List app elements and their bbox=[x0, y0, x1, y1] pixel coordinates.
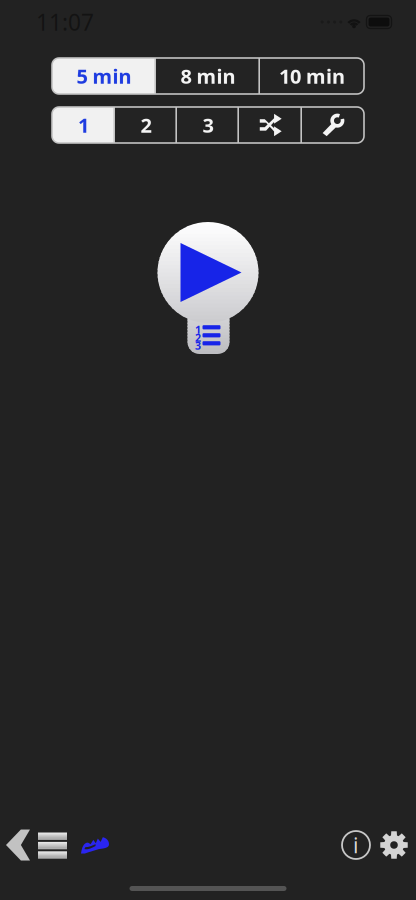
button[interactable]: 5 min bbox=[52, 58, 156, 94]
button[interactable] bbox=[239, 107, 302, 143]
staticText: 10 min bbox=[279, 63, 345, 89]
button[interactable]: 2 bbox=[115, 107, 177, 143]
button[interactable]: Workouts bbox=[73, 822, 117, 868]
button[interactable]: Play bbox=[157, 222, 258, 357]
button[interactable]: Back bbox=[4, 822, 36, 868]
button[interactable]: Settings bbox=[375, 822, 413, 868]
staticText: 3 bbox=[195, 338, 201, 353]
staticText: 11:07 bbox=[36, 7, 94, 37]
button[interactable]: 8 min bbox=[156, 58, 260, 94]
staticText: 2 bbox=[195, 330, 201, 345]
staticText: 2 bbox=[140, 112, 151, 138]
staticText: i bbox=[353, 831, 359, 859]
button[interactable]: Menu bbox=[36, 822, 73, 868]
button[interactable]: Info bbox=[337, 822, 375, 868]
staticText: 3 bbox=[202, 112, 213, 138]
staticText: 5 min bbox=[76, 63, 131, 89]
button[interactable] bbox=[302, 107, 364, 143]
staticText: 1 bbox=[78, 112, 89, 138]
button[interactable]: 3 bbox=[177, 107, 239, 143]
button[interactable]: 1 bbox=[52, 107, 115, 143]
staticText: 8 min bbox=[180, 63, 235, 89]
staticText: 1 bbox=[195, 322, 201, 337]
button[interactable]: 10 min bbox=[260, 58, 364, 94]
